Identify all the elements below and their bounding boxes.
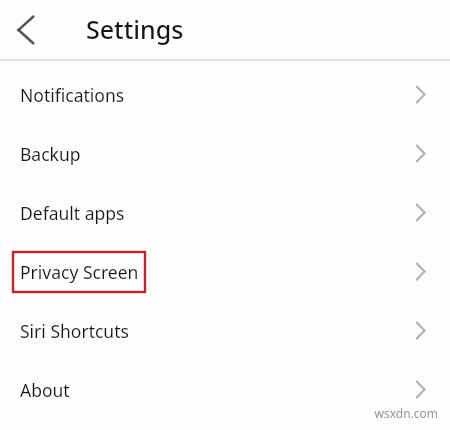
staticText: Backup <box>20 142 81 166</box>
staticText: Notifications <box>20 83 125 107</box>
staticText: wsxdn.com <box>374 405 438 421</box>
staticText: Privacy Screen <box>20 260 139 284</box>
staticText: About <box>20 378 70 402</box>
button[interactable]: Siri Shortcuts <box>0 301 450 360</box>
button[interactable]: Back <box>2 6 50 54</box>
staticText: Default apps <box>20 201 125 225</box>
button[interactable]: Backup <box>0 124 450 183</box>
button[interactable]: About <box>0 360 450 419</box>
button[interactable]: Privacy Screen <box>0 242 450 301</box>
button[interactable]: Default apps <box>0 183 450 242</box>
staticText: Siri Shortcuts <box>20 319 129 343</box>
staticText: Settings <box>86 12 184 46</box>
button[interactable]: Notifications <box>0 65 450 124</box>
